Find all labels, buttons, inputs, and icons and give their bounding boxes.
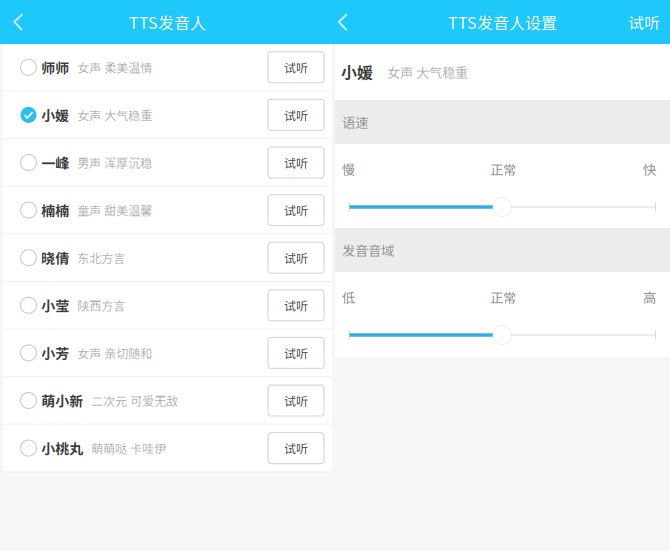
staticText: 陕西方言 [77, 297, 125, 314]
staticText: 二次元 可爱无敌 [91, 392, 178, 409]
button[interactable]: 小桃丸 [3, 425, 260, 471]
staticText: 试听 [284, 344, 308, 362]
staticText: 小莹 [41, 295, 69, 315]
staticText: 试听 [284, 154, 308, 171]
button[interactable]: 师师 [3, 44, 260, 91]
staticText: 东北方言 [77, 249, 125, 266]
staticText: TTS发音人 [129, 10, 206, 34]
button[interactable]: 楠楠 [3, 187, 260, 233]
button[interactable]: 试听 [618, 0, 670, 44]
staticText: 语速 [342, 112, 368, 132]
button[interactable]: 小媛 [3, 92, 260, 138]
button[interactable]: 试听 [260, 44, 332, 91]
staticText: 童声 甜美温馨 [77, 201, 152, 219]
button[interactable]: 试听 [260, 139, 332, 186]
staticText: 萌萌哒 卡哇伊 [91, 439, 166, 457]
button[interactable]: 试听 [260, 234, 332, 281]
button[interactable]: 试听 [260, 377, 332, 424]
button[interactable]: 萌小新 [3, 377, 260, 424]
button[interactable]: 试听 [260, 187, 332, 233]
button[interactable]: 晓倩 [3, 234, 260, 281]
button[interactable]: 试听 [260, 425, 332, 471]
button[interactable]: 小芳 [3, 330, 260, 376]
staticText: 试听 [284, 249, 308, 266]
staticText: 高 [643, 287, 656, 307]
staticText: 师师 [41, 57, 69, 77]
staticText: 晓倩 [41, 248, 69, 268]
button[interactable]: 试听 [260, 282, 332, 329]
staticText: 一峰 [41, 152, 69, 173]
staticText: 发音音域 [342, 240, 394, 260]
staticText: 女声 亲切随和 [77, 344, 152, 362]
staticText: 慢 [342, 159, 355, 179]
staticText: 试听 [284, 106, 308, 124]
button[interactable]: 试听 [260, 92, 332, 138]
staticText: 女声 大气稳重 [387, 62, 468, 82]
staticText: 楠楠 [41, 200, 69, 220]
staticText: 女声 大气稳重 [77, 106, 152, 124]
staticText: 小芳 [41, 343, 69, 363]
staticText: 试听 [284, 439, 308, 457]
staticText: 女声 柔美温情 [77, 59, 152, 76]
button[interactable]: 一峰 [3, 139, 260, 186]
button[interactable]: 小莹 [3, 282, 260, 329]
staticText: 正常 [490, 287, 516, 307]
button[interactable]: Back [335, 0, 351, 44]
staticText: 试听 [284, 59, 308, 76]
staticText: 试听 [628, 10, 660, 34]
button[interactable]: Back [0, 0, 37, 44]
staticText: 试听 [284, 392, 308, 409]
staticText: 快 [643, 159, 656, 179]
staticText: 低 [342, 287, 355, 307]
staticText: 试听 [284, 297, 308, 314]
staticText: 小媛 [41, 105, 69, 125]
staticText: 试听 [284, 201, 308, 219]
staticText: 萌小新 [41, 390, 83, 411]
staticText: 男声 浑厚沉稳 [77, 154, 152, 171]
staticText: TTS发音人设置 [448, 10, 557, 34]
staticText: 正常 [490, 159, 516, 179]
staticText: 小媛 [341, 60, 373, 84]
button[interactable]: 试听 [260, 330, 332, 376]
staticText: 小桃丸 [41, 438, 83, 458]
